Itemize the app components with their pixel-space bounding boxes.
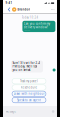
staticText: 9:41 [6,1,13,5]
button[interactable]: Reschedule [12,85,46,90]
staticText: Message [6,110,17,113]
staticText: Today 10:24 [21,16,38,19]
staticText: Track my parcel [20,79,38,83]
staticText: Reschedule [20,86,37,89]
staticText: Brandon [17,8,30,11]
button[interactable]: Speak to an agent [12,97,46,103]
button[interactable]: Brandon [12,7,30,12]
staticText: 10:24 AM [24,29,30,31]
staticText: Sure! It's set for 2–4 PM today. We'll t… [12,61,40,72]
button[interactable]: Track my parcel [12,78,46,84]
button[interactable]: More options [51,6,55,13]
staticText: Speak to an agent [17,98,41,102]
button[interactable]: Leave with neighbour [12,91,46,96]
staticText: Leave with neighbour [13,92,44,95]
button[interactable]: Back [6,6,12,13]
staticText: Can you confirm my delivery window? [24,22,50,29]
